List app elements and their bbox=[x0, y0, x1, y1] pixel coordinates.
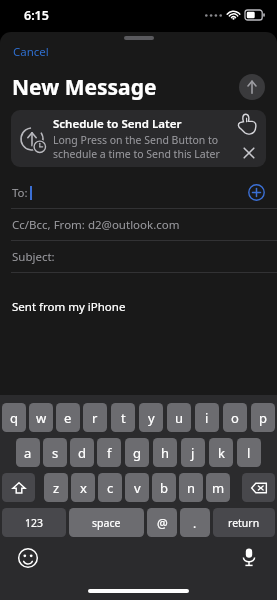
staticText: j bbox=[191, 444, 195, 462]
button[interactable]: s bbox=[43, 438, 67, 467]
button[interactable]: i bbox=[195, 403, 219, 432]
button[interactable]: Add contact bbox=[248, 184, 265, 201]
staticText: 6:15 bbox=[24, 7, 49, 24]
button[interactable]: . bbox=[180, 508, 210, 537]
button[interactable]: return bbox=[213, 508, 275, 537]
button[interactable]: To: bbox=[0, 176, 277, 209]
staticText: w bbox=[36, 409, 47, 427]
button[interactable]: space bbox=[69, 508, 144, 537]
button[interactable]: o bbox=[223, 403, 247, 432]
button[interactable]: n bbox=[179, 473, 203, 502]
button[interactable]: Cc/Bcc, From: d2@outlook.com bbox=[0, 209, 277, 241]
button[interactable]: Cancel bbox=[13, 44, 49, 60]
button[interactable]: e bbox=[56, 403, 80, 432]
staticText: f bbox=[107, 444, 112, 462]
staticText: v bbox=[134, 479, 141, 497]
button[interactable]: b bbox=[152, 473, 176, 502]
button[interactable]: y bbox=[139, 403, 163, 432]
staticText: c bbox=[107, 479, 114, 497]
button[interactable]: Subject: bbox=[0, 241, 277, 273]
button[interactable]: Dictate bbox=[239, 547, 259, 567]
staticText: h bbox=[161, 444, 170, 462]
staticText: i bbox=[205, 409, 209, 427]
staticText: @ bbox=[157, 515, 168, 531]
staticText: p bbox=[259, 409, 267, 427]
button[interactable]: Backspace bbox=[242, 473, 275, 502]
staticText: 123 bbox=[25, 516, 44, 530]
button[interactable]: a bbox=[16, 438, 40, 467]
button[interactable]: Dismiss bbox=[239, 143, 259, 163]
button[interactable]: Schedule to Send Later bbox=[11, 110, 266, 167]
staticText: n bbox=[187, 479, 196, 497]
staticText: m bbox=[212, 479, 225, 497]
button[interactable]: @ bbox=[147, 508, 177, 537]
staticText: u bbox=[175, 409, 184, 427]
button[interactable]: q bbox=[2, 403, 26, 432]
staticText: return bbox=[228, 516, 260, 530]
button[interactable]: c bbox=[98, 473, 122, 502]
staticText: Sent from my iPhone bbox=[12, 299, 126, 315]
button[interactable]: w bbox=[29, 403, 53, 432]
staticText: z bbox=[53, 479, 60, 497]
staticText: r bbox=[92, 409, 98, 427]
staticText: Long Press on the Send Button to schedul… bbox=[53, 133, 222, 161]
button[interactable]: m bbox=[206, 473, 230, 502]
staticText: t bbox=[121, 409, 126, 427]
staticText: k bbox=[218, 444, 225, 462]
staticText: l bbox=[247, 444, 251, 462]
staticText: e bbox=[64, 409, 72, 427]
button[interactable]: g bbox=[125, 438, 149, 467]
button[interactable]: p bbox=[251, 403, 275, 432]
button[interactable]: d bbox=[70, 438, 94, 467]
staticText: d bbox=[78, 444, 86, 462]
button[interactable]: Emoji bbox=[18, 548, 38, 568]
staticText: a bbox=[24, 444, 32, 462]
button[interactable]: x bbox=[71, 473, 95, 502]
button[interactable]: h bbox=[153, 438, 177, 467]
staticText: Cc/Bcc, From: d2@outlook.com bbox=[12, 217, 180, 233]
button[interactable]: Send bbox=[239, 74, 265, 100]
button[interactable]: v bbox=[125, 473, 149, 502]
button[interactable]: l bbox=[237, 438, 261, 467]
button[interactable]: r bbox=[83, 403, 107, 432]
staticText: Subject: bbox=[12, 249, 55, 265]
button[interactable]: z bbox=[44, 473, 68, 502]
staticText: g bbox=[133, 444, 141, 462]
staticText: To: bbox=[12, 185, 28, 201]
button[interactable]: u bbox=[167, 403, 191, 432]
staticText: y bbox=[148, 409, 155, 427]
button[interactable]: 123 bbox=[2, 508, 66, 537]
button[interactable]: f bbox=[97, 438, 121, 467]
staticText: q bbox=[10, 409, 18, 427]
staticText: . bbox=[193, 515, 197, 531]
staticText: o bbox=[231, 409, 239, 427]
staticText: b bbox=[160, 479, 168, 497]
button[interactable]: Shift bbox=[2, 473, 35, 502]
staticText: x bbox=[80, 479, 87, 497]
button[interactable]: t bbox=[111, 403, 135, 432]
staticText: New Message bbox=[12, 73, 157, 102]
staticText: Schedule to Send Later bbox=[53, 116, 182, 132]
staticText: s bbox=[52, 444, 59, 462]
button[interactable]: k bbox=[209, 438, 233, 467]
button[interactable]: j bbox=[181, 438, 205, 467]
staticText: space bbox=[92, 516, 121, 530]
